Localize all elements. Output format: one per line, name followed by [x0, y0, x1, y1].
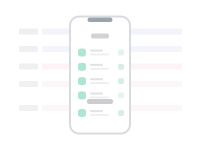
- button[interactable]: Conversation: [69, 63, 131, 71]
- button[interactable]: Conversation: [69, 109, 131, 117]
- button[interactable]: Conversation: [69, 91, 131, 99]
- button[interactable]: Conversation: [69, 48, 131, 56]
- button[interactable]: Conversation: [69, 77, 131, 85]
